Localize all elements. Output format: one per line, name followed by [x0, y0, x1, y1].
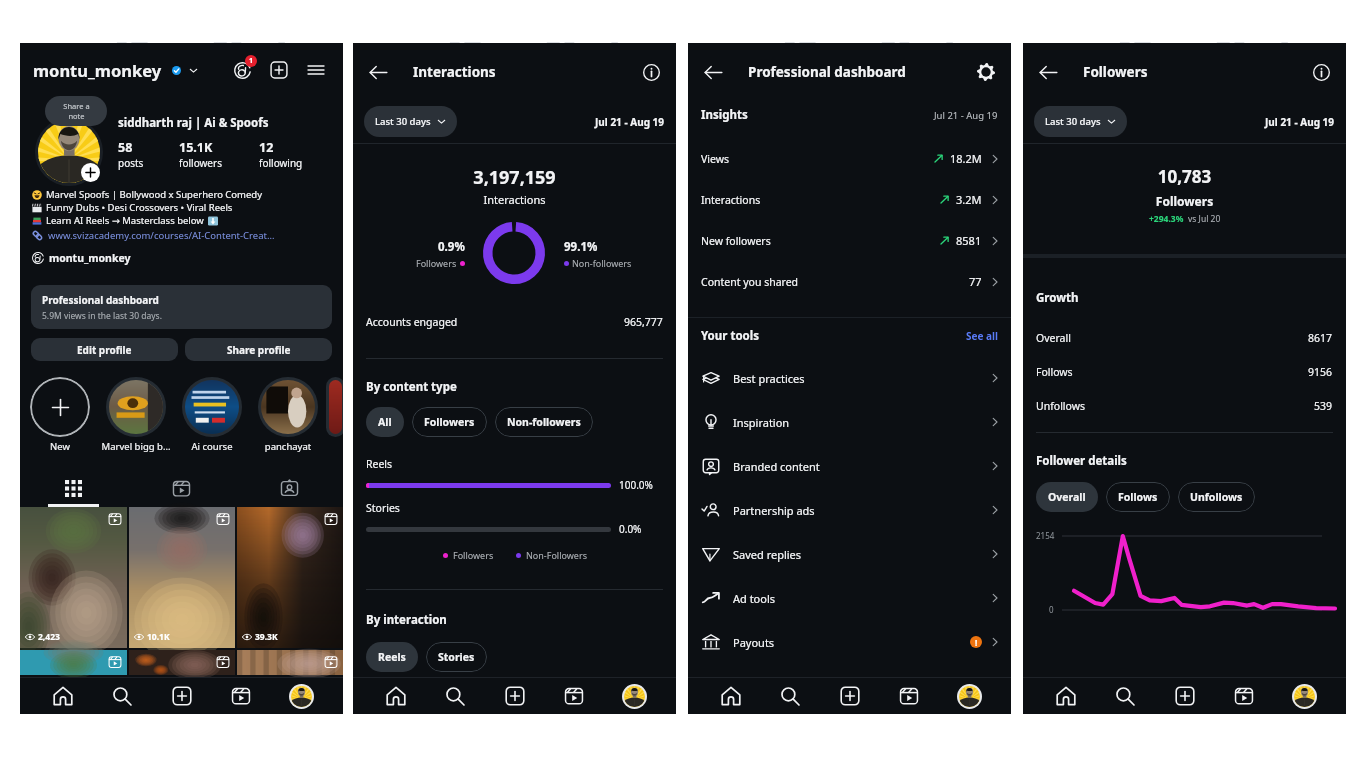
staticText: Jul 21 - Aug 19 [934, 109, 998, 122]
button[interactable]: Back [364, 58, 392, 86]
button[interactable]: Profile [1287, 679, 1321, 713]
button[interactable]: 2,423 [20, 507, 127, 648]
button[interactable]: Reels tab [127, 472, 235, 504]
button[interactable] [261, 380, 315, 434]
button[interactable]: Stories [426, 642, 487, 672]
staticText: 8581 [956, 233, 982, 248]
staticText: 2,423 [38, 631, 60, 643]
button[interactable]: New post [266, 57, 292, 83]
button[interactable]: Profile [952, 679, 986, 713]
button[interactable]: Saved replies [688, 532, 1011, 576]
button[interactable]: Last 30 days [1034, 106, 1127, 137]
button[interactable] [329, 380, 342, 434]
button[interactable]: Branded content [688, 444, 1011, 488]
button[interactable]: Home [379, 679, 413, 713]
button[interactable]: Follows [1106, 482, 1170, 512]
staticText: Ai course [174, 440, 250, 453]
button[interactable]: Interactions [688, 179, 1011, 220]
button[interactable]: Non-followers [495, 407, 593, 437]
button[interactable]: Search [773, 679, 807, 713]
button[interactable]: Menu [303, 57, 329, 83]
staticText: New followers [701, 234, 771, 248]
button[interactable]: Reels [224, 679, 258, 713]
button[interactable]: Profile [617, 679, 651, 713]
staticText: 10.1K [147, 631, 170, 643]
button[interactable]: Search [438, 679, 472, 713]
button[interactable]: Profile [284, 679, 318, 713]
button[interactable]: Search [1108, 679, 1142, 713]
button[interactable]: Add story [81, 163, 100, 182]
staticText: Followers [416, 257, 457, 269]
button[interactable]: Professional dashboard [31, 285, 332, 329]
button[interactable]: Back [1034, 58, 1062, 86]
button[interactable]: Home [714, 679, 748, 713]
button[interactable]: Share a note [45, 96, 107, 126]
button[interactable]: Settings [972, 58, 1000, 86]
staticText: Jul 21 - Aug 19 [1265, 115, 1335, 129]
staticText: Last 30 days [375, 115, 431, 128]
staticText: Overall [1048, 490, 1086, 504]
staticText: 2154 [1036, 530, 1055, 541]
button[interactable]: Home [1049, 679, 1083, 713]
staticText: 0.0% [619, 522, 642, 536]
staticText: Views [701, 152, 730, 166]
button[interactable]: Create [833, 679, 867, 713]
button[interactable]: Info [1307, 58, 1335, 86]
button[interactable]: Unfollows [1178, 482, 1255, 512]
staticText: Funny Dubs • Desi Crossovers • Viral Ree… [46, 201, 233, 214]
button[interactable]: Share profile [185, 338, 332, 361]
button[interactable]: Info [637, 58, 665, 86]
staticText: 5.9M views in the last 30 days. [42, 310, 162, 322]
staticText: Marvel bigg b… [98, 440, 174, 453]
button[interactable]: Best practices [688, 356, 1011, 400]
staticText: Followers [1083, 63, 1148, 81]
button[interactable]: Payouts [688, 620, 1011, 664]
button[interactable]: 39.3K [237, 507, 343, 648]
button[interactable]: 10.1K [129, 507, 235, 648]
button[interactable]: Content you shared [688, 261, 1011, 302]
button[interactable]: Create [498, 679, 532, 713]
button[interactable]: Overall [1036, 482, 1098, 512]
staticText: Interactions [701, 193, 761, 207]
button[interactable]: New highlight [30, 377, 90, 437]
button[interactable]: Create [1168, 679, 1202, 713]
staticText: 0.9% [438, 239, 465, 255]
staticText: Share profile [227, 343, 291, 357]
button[interactable] [185, 380, 239, 434]
button[interactable]: Last 30 days [364, 106, 457, 137]
button[interactable]: Views [688, 138, 1011, 179]
button[interactable]: Ad tools [688, 576, 1011, 620]
button[interactable] [237, 650, 343, 675]
button[interactable]: Create [165, 679, 199, 713]
button[interactable]: Back [699, 58, 727, 86]
staticText: Growth [1036, 290, 1079, 306]
button[interactable]: Reels [892, 679, 926, 713]
button[interactable]: All [366, 407, 404, 437]
staticText: Non-followers [507, 415, 581, 429]
button[interactable]: Partnership ads [688, 488, 1011, 532]
staticText: Follows [1118, 490, 1158, 504]
button[interactable]: Reels [366, 642, 418, 672]
button[interactable]: Search [105, 679, 139, 713]
staticText: Content you shared [701, 275, 799, 289]
staticText: siddharth raj | Ai & Spoofs [118, 115, 269, 131]
button[interactable]: Tagged [235, 472, 343, 504]
button[interactable]: See all [966, 329, 998, 343]
button[interactable]: Threads [229, 57, 255, 83]
button[interactable]: Reels [557, 679, 591, 713]
button[interactable]: Inspiration [688, 400, 1011, 444]
button[interactable]: Reels [1227, 679, 1261, 713]
staticText: Follower details [1036, 453, 1127, 469]
staticText: Accounts engaged [366, 315, 458, 329]
button[interactable] [109, 380, 163, 434]
button[interactable] [20, 650, 127, 675]
staticText: 0 [1049, 604, 1054, 615]
button[interactable] [129, 650, 235, 675]
button[interactable]: Posts grid [20, 472, 127, 504]
button[interactable]: New followers [688, 220, 1011, 261]
button[interactable]: Home [46, 679, 80, 713]
staticText: 100.0% [619, 478, 653, 492]
staticText: Jul 21 - Aug 19 [595, 115, 665, 129]
button[interactable]: Edit profile [31, 338, 178, 361]
button[interactable]: Followers [412, 407, 487, 437]
